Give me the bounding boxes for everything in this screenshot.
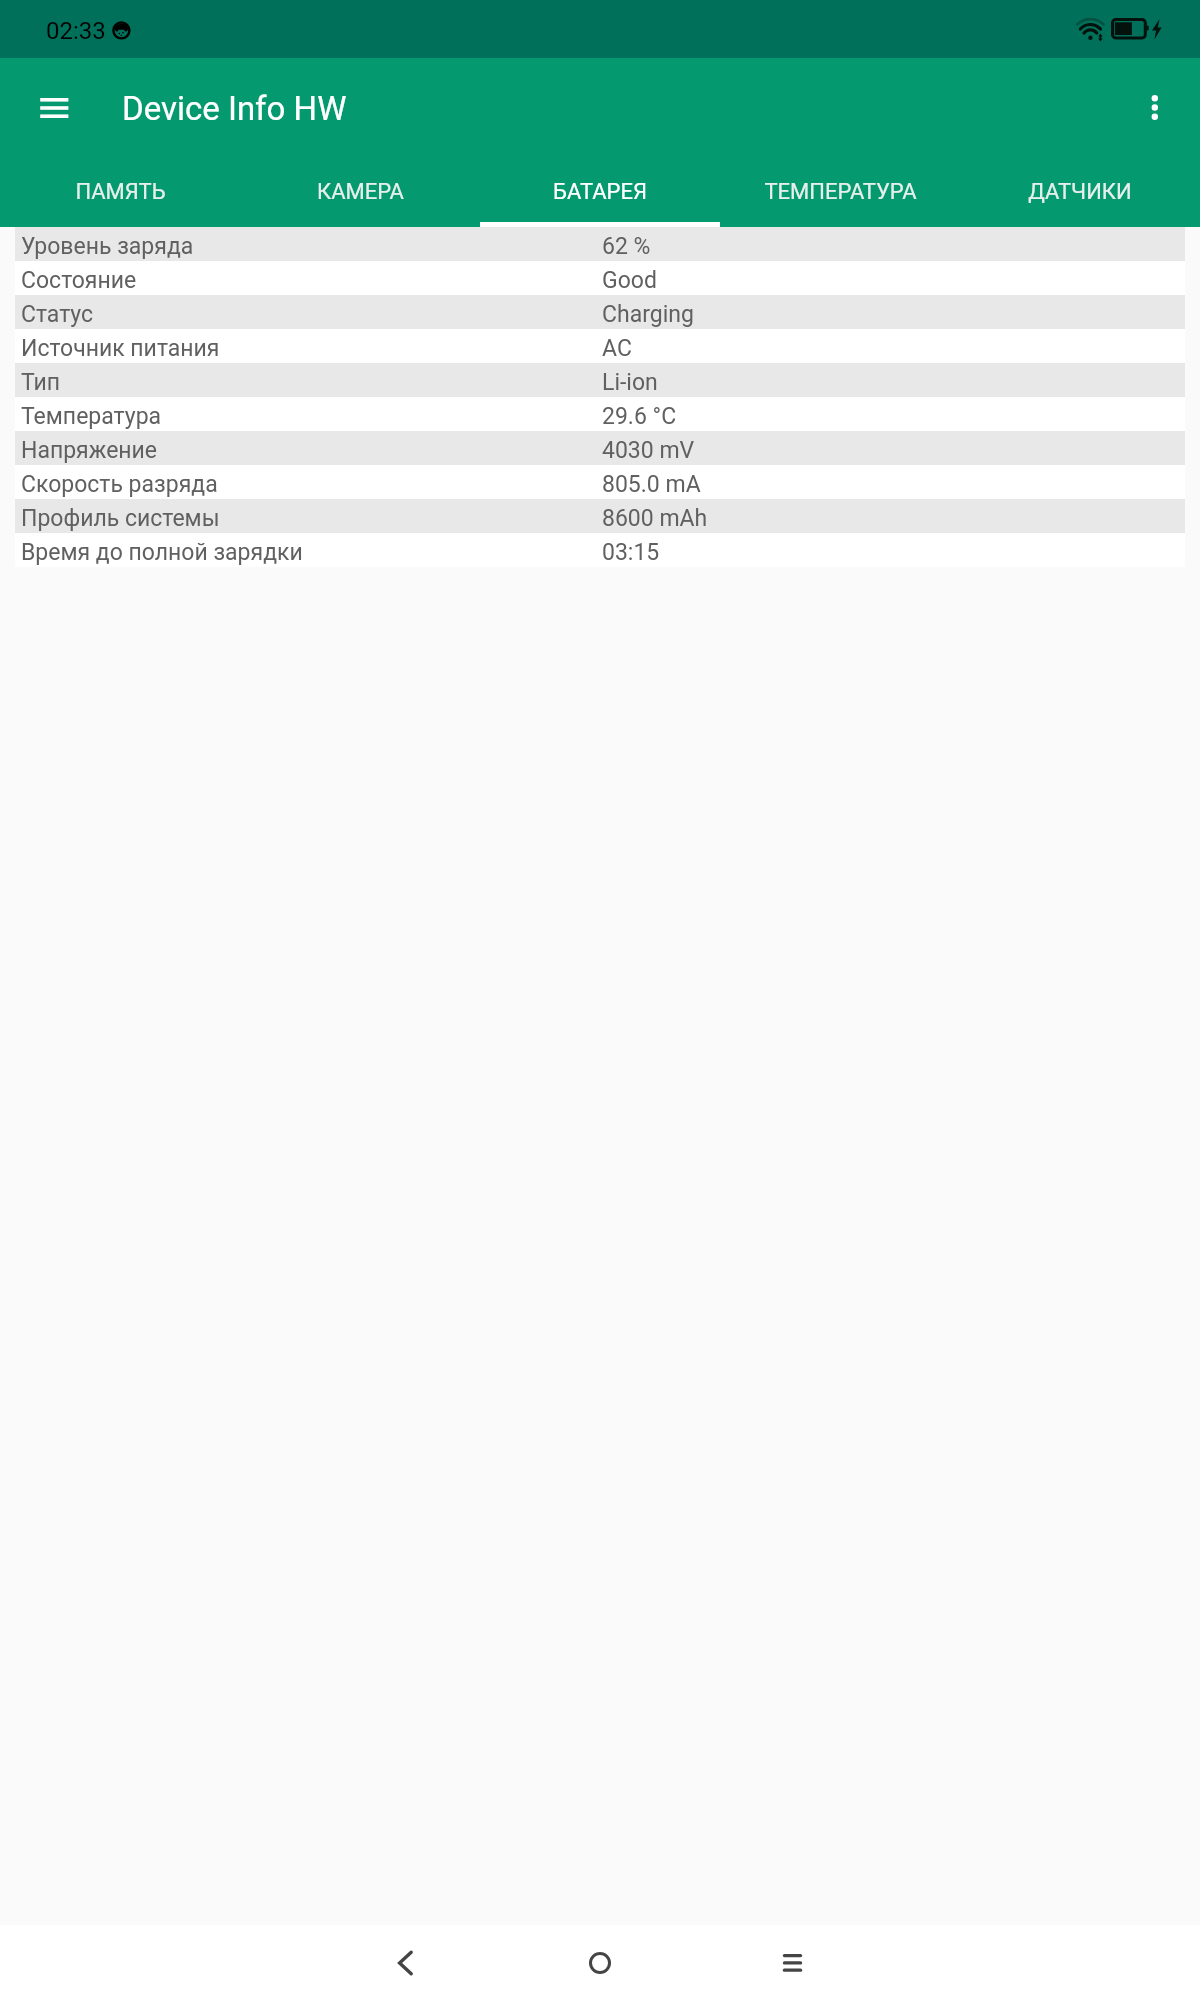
staticText: Напряжение xyxy=(21,437,158,464)
staticText: Время до полной зарядки xyxy=(21,539,303,566)
button[interactable]: Статус xyxy=(0,295,1200,329)
button[interactable]: Home xyxy=(555,1925,645,2000)
staticText: Состояние xyxy=(21,267,137,294)
staticText: БАТАРЕЯ xyxy=(553,179,647,205)
button[interactable]: Источник питания xyxy=(0,329,1200,363)
staticText: Уровень заряда xyxy=(21,233,194,260)
staticText: Скорость разряда xyxy=(21,471,218,498)
staticText: AC xyxy=(602,335,632,362)
button[interactable]: ТЕМПЕРАТУРА xyxy=(720,158,960,227)
button[interactable]: Open navigation menu xyxy=(18,72,90,144)
button[interactable]: БАТАРЕЯ xyxy=(480,158,720,227)
button[interactable]: КАМЕРА xyxy=(240,158,480,227)
staticText: Good xyxy=(602,267,657,294)
button[interactable]: Скорость разряда xyxy=(0,465,1200,499)
staticText: 8600 mAh xyxy=(602,505,708,532)
staticText: Device Info HW xyxy=(122,89,347,128)
button[interactable]: Recent apps xyxy=(747,1925,837,2000)
staticText: ПАМЯТЬ xyxy=(75,179,166,205)
button[interactable]: Тип xyxy=(0,363,1200,397)
button[interactable]: More options xyxy=(1119,72,1191,144)
button[interactable]: Температура xyxy=(0,397,1200,431)
staticText: Статус xyxy=(21,301,94,328)
staticText: 62 % xyxy=(602,233,651,260)
button[interactable]: Профиль системы xyxy=(0,499,1200,533)
staticText: 29.6 °C xyxy=(602,403,677,430)
button[interactable]: Уровень заряда xyxy=(0,227,1200,261)
button[interactable]: ПАМЯТЬ xyxy=(0,158,240,227)
staticText: Источник питания xyxy=(21,335,220,362)
staticText: Профиль системы xyxy=(21,505,220,532)
button[interactable]: Состояние xyxy=(0,261,1200,295)
staticText: Тип xyxy=(21,369,61,396)
button[interactable]: Back xyxy=(361,1925,451,2000)
button[interactable]: Напряжение xyxy=(0,431,1200,465)
staticText: 4030 mV xyxy=(602,437,695,464)
staticText: КАМЕРА xyxy=(317,179,404,205)
button[interactable]: Время до полной зарядки xyxy=(0,533,1200,567)
staticText: Температура xyxy=(21,403,162,430)
staticText: 03:15 xyxy=(602,539,660,566)
staticText: 02:33 xyxy=(46,17,106,45)
staticText: ТЕМПЕРАТУРА xyxy=(764,179,917,205)
staticText: Li-ion xyxy=(602,369,658,396)
staticText: ДАТЧИКИ xyxy=(1028,179,1132,205)
button[interactable]: ДАТЧИКИ xyxy=(960,158,1200,227)
staticText: 805.0 mA xyxy=(602,471,701,498)
staticText: Charging xyxy=(602,301,694,328)
